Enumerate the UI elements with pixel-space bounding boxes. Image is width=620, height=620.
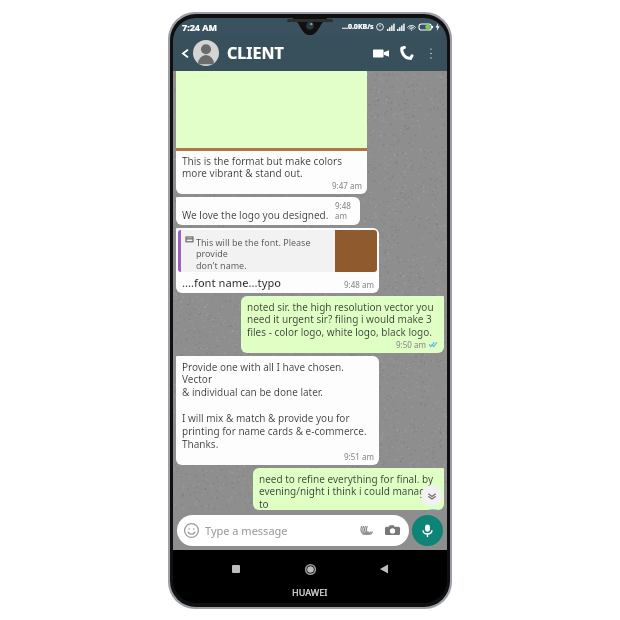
staticText: 9:48 am xyxy=(344,279,374,290)
staticText: need to refine everything for final. by … xyxy=(259,472,438,510)
staticText: This will be the font. Please provide do… xyxy=(196,236,331,272)
button[interactable]: This is the format but make colors more … xyxy=(176,71,367,194)
staticText: 9:48 am xyxy=(335,200,355,221)
button[interactable]: Home xyxy=(299,558,321,580)
staticText: This is the format but make colors more … xyxy=(182,154,342,180)
button[interactable]: Record voice message xyxy=(412,515,443,546)
staticText: Provide one with all I have chosen. Vect… xyxy=(182,360,373,451)
staticText: noted sir. the high resolution vector yo… xyxy=(247,300,434,339)
staticText: 9:51 am xyxy=(344,451,374,462)
staticText: 9:50 am xyxy=(396,339,426,350)
button[interactable]: Video call xyxy=(368,40,394,66)
button[interactable]: Scroll to bottom xyxy=(421,485,442,506)
button[interactable]: More options xyxy=(420,42,442,64)
staticText: We love the logo you designed. xyxy=(182,208,329,222)
button[interactable]: We love the logo you designed. xyxy=(176,197,360,225)
button[interactable]: CLIENT xyxy=(193,40,368,66)
button[interactable]: Attach xyxy=(357,521,376,540)
button[interactable]: Back xyxy=(373,558,395,580)
staticText: CLIENT xyxy=(227,42,284,64)
staticText: ...0.0KB/s xyxy=(342,22,374,32)
staticText: 7:24 AM xyxy=(182,21,218,33)
staticText: 9:47 am xyxy=(332,180,362,191)
button[interactable]: Camera xyxy=(383,521,402,540)
staticText: HUAWEI xyxy=(292,586,328,598)
staticText: Type a message xyxy=(205,523,357,538)
button[interactable]: noted sir. the high resolution vector yo… xyxy=(241,296,444,353)
button[interactable]: Type a message xyxy=(177,515,409,546)
staticText: ....font name...typo xyxy=(182,275,282,290)
button[interactable]: Provide one with all I have chosen. Vect… xyxy=(176,356,379,465)
button[interactable]: need to refine everything for final. by … xyxy=(253,468,444,510)
button[interactable]: Recent apps xyxy=(225,558,247,580)
button[interactable]: This will be the font. Please provide do… xyxy=(176,228,379,293)
button[interactable]: Voice call xyxy=(394,40,420,66)
button[interactable]: Back xyxy=(178,46,192,60)
